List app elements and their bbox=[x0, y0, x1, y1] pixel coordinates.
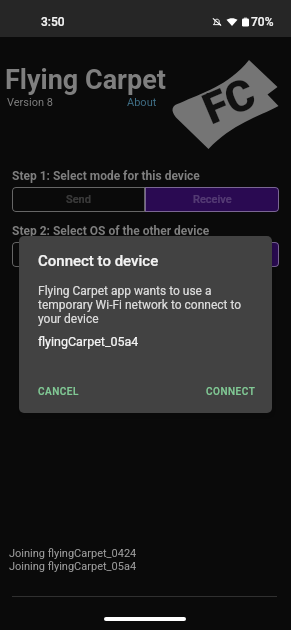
staticText: Receive bbox=[193, 193, 232, 206]
staticText: CONNECT bbox=[206, 386, 256, 398]
staticText: Joining flyingCarpet_05a4 bbox=[9, 560, 137, 573]
button[interactable]: Linux bbox=[190, 242, 279, 267]
staticText: Joining flyingCarpet_0424 bbox=[9, 547, 137, 560]
staticText: Android bbox=[37, 248, 76, 261]
staticText: Flying Carpet app wants to use a tempora… bbox=[38, 284, 256, 326]
staticText: Flying Carpet bbox=[5, 64, 166, 96]
staticText: FC bbox=[195, 68, 263, 134]
button[interactable]: CANCEL bbox=[33, 381, 84, 403]
staticText: flyingCarpet_05a4 bbox=[38, 334, 139, 349]
button[interactable]: Receive bbox=[145, 187, 279, 212]
button[interactable]: iOS bbox=[101, 242, 190, 267]
staticText: Step 2: Select OS of the other device bbox=[12, 224, 210, 238]
staticText: Version 8 bbox=[7, 96, 53, 109]
staticText: 70% bbox=[251, 15, 274, 29]
staticText: 3:50 bbox=[41, 15, 65, 29]
staticText: Send bbox=[66, 193, 91, 206]
button[interactable]: CONNECT bbox=[201, 381, 261, 403]
staticText: iOS bbox=[137, 248, 155, 261]
staticText: About bbox=[127, 96, 157, 109]
staticText: Connect to device bbox=[38, 252, 159, 270]
button[interactable]: Send bbox=[12, 187, 145, 212]
button[interactable]: About bbox=[127, 96, 157, 109]
staticText: Step 1: Select mode for this device bbox=[12, 169, 200, 183]
button[interactable]: Android bbox=[12, 242, 101, 267]
staticText: CANCEL bbox=[38, 386, 79, 398]
